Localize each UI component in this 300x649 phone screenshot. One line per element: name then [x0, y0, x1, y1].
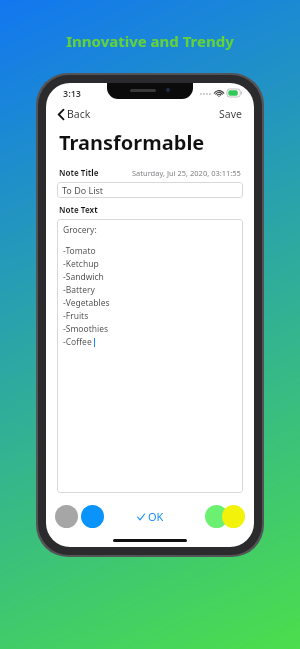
staticText: OK — [148, 509, 164, 524]
staticText: -Battery — [63, 284, 95, 296]
button[interactable]: Back — [54, 105, 95, 123]
staticText: Grocery: — [63, 224, 97, 236]
button[interactable]: Green colour — [205, 505, 228, 528]
staticText: Note Text — [59, 204, 98, 215]
staticText: Save — [219, 107, 242, 121]
staticText: -Coffee — [63, 336, 92, 348]
staticText: Transformable — [59, 129, 205, 156]
button[interactable]: Yellow colour — [222, 505, 245, 528]
button[interactable]: Grey colour — [55, 505, 78, 528]
staticText: Note Title — [59, 167, 99, 178]
staticText: -Smoothies — [63, 323, 109, 335]
staticText: 3:13 — [63, 87, 81, 99]
button[interactable]: Blue colour — [81, 505, 104, 528]
staticText: -Tomato — [63, 245, 96, 257]
staticText: -Fruits — [63, 310, 89, 322]
staticText: Back — [67, 107, 91, 121]
button[interactable]: To Do List — [57, 182, 243, 198]
staticText: Innovative and Trendy — [66, 31, 234, 51]
staticText: -Sandwich — [63, 271, 104, 283]
button[interactable]: Save — [215, 105, 246, 123]
staticText: To Do List — [62, 184, 104, 196]
staticText: -Vegetables — [63, 297, 110, 309]
button[interactable]: OK — [131, 506, 170, 527]
staticText: Saturday, Jul 25, 2020, 03:11:55 — [132, 168, 241, 178]
button[interactable]: Grocery: — [57, 219, 243, 493]
staticText: -Ketchup — [63, 258, 99, 270]
